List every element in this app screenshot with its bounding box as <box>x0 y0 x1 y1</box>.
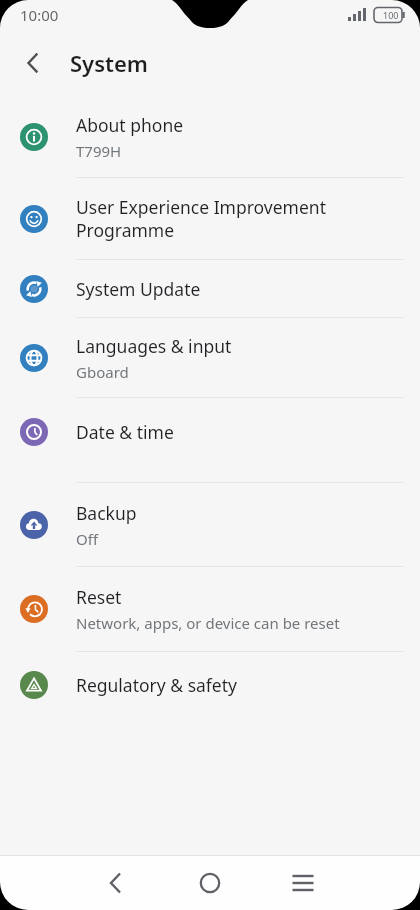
staticText: System <box>70 48 148 78</box>
button[interactable] <box>92 859 140 907</box>
staticText: User Experience Improvement Programme <box>76 195 326 242</box>
staticText: Languages & input <box>76 334 232 358</box>
button[interactable]: Reset <box>0 567 420 651</box>
button[interactable]: Date & time <box>0 398 420 482</box>
button[interactable] <box>186 859 234 907</box>
staticText: Gboard <box>76 362 129 382</box>
staticText: Backup <box>76 501 137 525</box>
staticText: 10:00 <box>20 5 59 25</box>
staticText: T799H <box>76 141 122 161</box>
staticText: Date & time <box>76 420 174 444</box>
staticText: Off <box>76 529 99 549</box>
button[interactable]: Backup <box>0 483 420 566</box>
staticText: Reset <box>76 585 122 609</box>
staticText: Regulatory & safety <box>76 673 237 697</box>
button[interactable]: About phone <box>0 96 420 177</box>
button[interactable]: User Experience Improvement Programme <box>0 178 420 259</box>
staticText: About phone <box>76 113 184 137</box>
button[interactable]: System Update <box>0 260 420 317</box>
button[interactable] <box>279 859 327 907</box>
button[interactable]: Regulatory & safety <box>0 652 420 718</box>
staticText: System Update <box>76 277 201 301</box>
button[interactable] <box>9 39 57 87</box>
staticText: Network, apps, or device can be reset <box>76 613 340 633</box>
staticText: 100 <box>383 9 399 21</box>
button[interactable]: Languages & input <box>0 318 420 397</box>
